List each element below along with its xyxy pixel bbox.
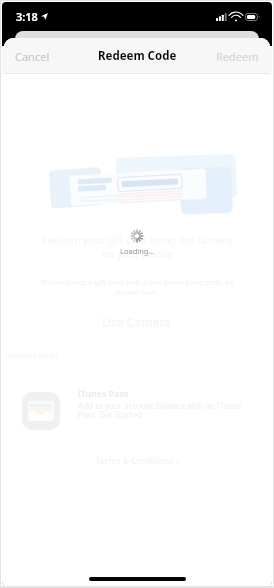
staticText: Use Camera <box>102 314 172 330</box>
button[interactable]: Redeem <box>205 43 270 70</box>
staticText: Redeem <box>216 49 259 64</box>
staticText: Cancel <box>15 49 50 64</box>
button[interactable]: iTunes Pass <box>4 392 270 430</box>
staticText: Redeem Code <box>98 48 177 64</box>
staticText: 3:18 <box>16 9 38 24</box>
staticText: Add to your account balance with an iTun… <box>78 400 242 421</box>
button[interactable]: Cancel <box>4 43 61 70</box>
staticText: iTunes Pass <box>78 387 129 399</box>
staticText: Loading... <box>120 246 155 256</box>
staticText: Redeem your gift card using the camera o… <box>18 233 256 261</box>
staticText: Terms & Conditions › <box>96 455 179 467</box>
